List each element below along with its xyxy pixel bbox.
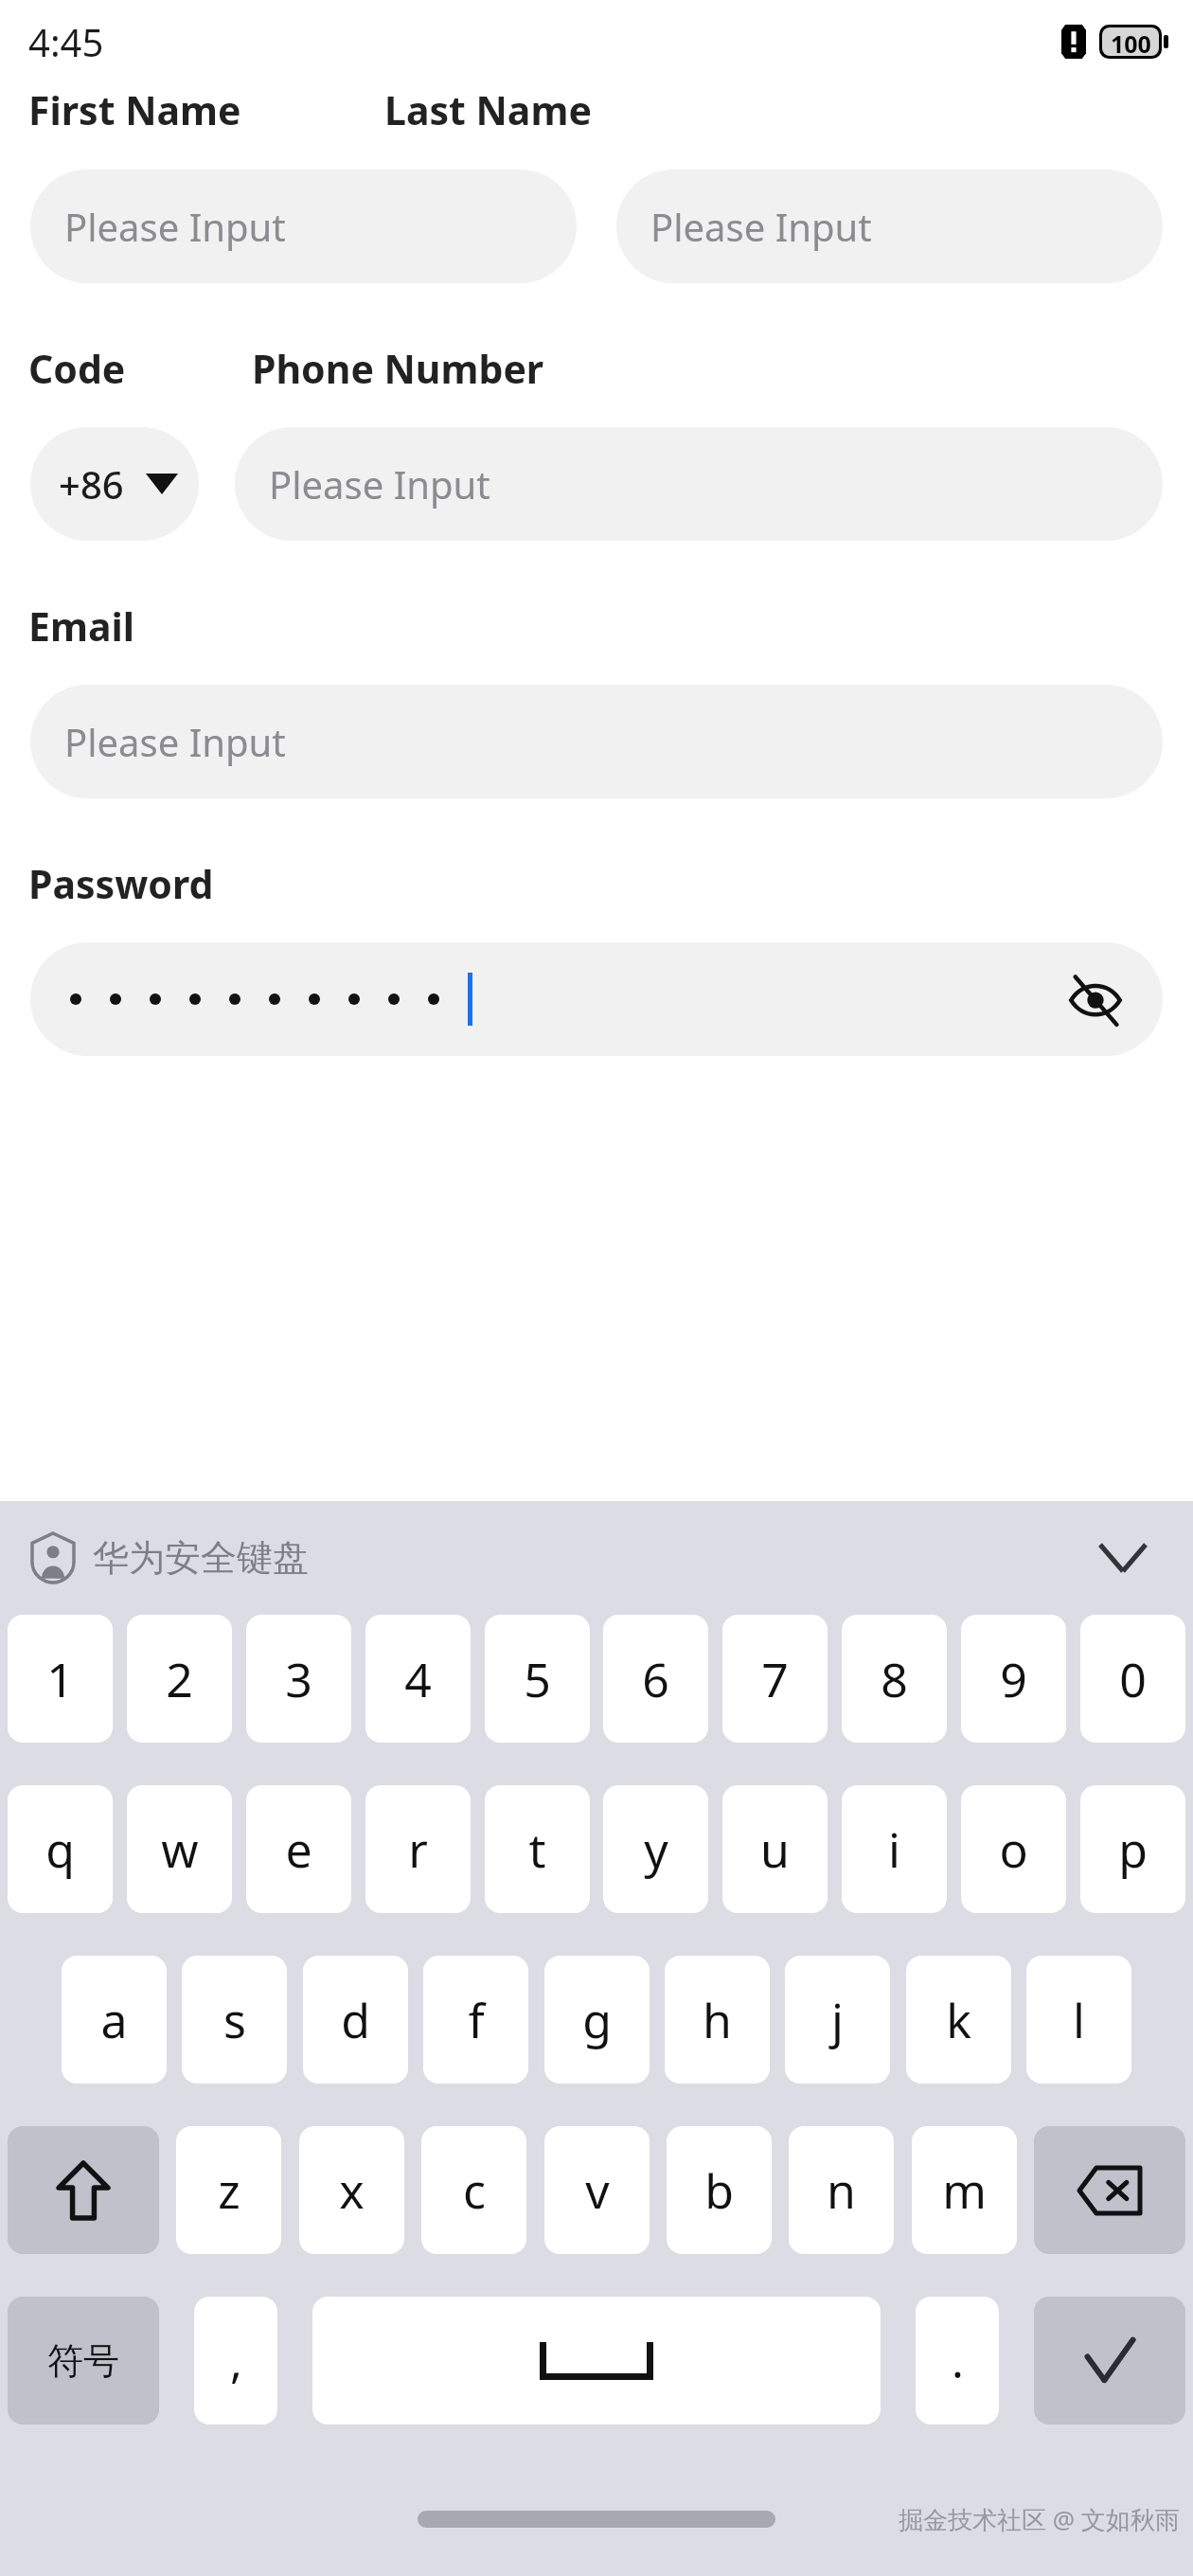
staticText: u — [760, 1817, 790, 1882]
button[interactable]: 6 — [603, 1615, 708, 1743]
button[interactable]: 3 — [246, 1615, 351, 1743]
staticText: p — [1118, 1817, 1148, 1882]
staticText: w — [161, 1817, 199, 1882]
button[interactable]: 5 — [485, 1615, 590, 1743]
other: Shift — [59, 2163, 108, 2218]
staticText: y — [644, 1817, 668, 1882]
staticText: 2 — [166, 1647, 193, 1711]
button[interactable]: 7 — [722, 1615, 828, 1743]
button[interactable]: , — [194, 2297, 277, 2424]
button[interactable]: o — [961, 1785, 1066, 1913]
button[interactable]: s — [182, 1956, 287, 2084]
staticText: h — [703, 1988, 732, 2052]
button[interactable]: t — [485, 1785, 590, 1913]
staticText: f — [468, 1988, 485, 2052]
staticText: 7 — [761, 1647, 789, 1711]
button[interactable]: v — [544, 2126, 650, 2254]
button[interactable]: Hide keyboard — [1085, 1520, 1161, 1596]
staticText: . — [952, 2330, 964, 2391]
button[interactable]: p — [1080, 1785, 1185, 1913]
button[interactable]: y — [603, 1785, 708, 1913]
button[interactable]: Show password — [1055, 958, 1136, 1040]
button[interactable]: . — [916, 2297, 999, 2424]
staticText: v — [585, 2158, 610, 2223]
staticText: n — [827, 2158, 856, 2223]
staticText: Please Input — [64, 201, 286, 252]
button[interactable]: b — [667, 2126, 772, 2254]
button[interactable]: l — [1026, 1956, 1131, 2084]
button[interactable]: w — [127, 1785, 232, 1913]
staticText: 4:45 — [28, 16, 104, 67]
button[interactable]: k — [906, 1956, 1011, 2084]
staticText: b — [704, 2158, 734, 2223]
staticText: z — [218, 2158, 240, 2223]
button[interactable]: r — [365, 1785, 471, 1913]
staticText: s — [223, 1988, 246, 2052]
staticText: d — [341, 1988, 370, 2052]
staticText: 掘金技术社区 @ 文如秋雨 — [899, 2502, 1180, 2536]
staticText: a — [100, 1988, 128, 2052]
button[interactable]: n — [789, 2126, 894, 2254]
button[interactable]: 8 — [842, 1615, 947, 1743]
button[interactable]: m — [912, 2126, 1017, 2254]
button[interactable]: 1 — [8, 1615, 113, 1743]
staticText: i — [888, 1817, 900, 1882]
staticText: q — [45, 1817, 75, 1882]
button[interactable]: q — [8, 1785, 113, 1913]
button[interactable]: 9 — [961, 1615, 1066, 1743]
button[interactable]: c — [421, 2126, 526, 2254]
staticText: Please Input — [650, 201, 872, 252]
staticText: 9 — [1000, 1647, 1027, 1711]
staticText: l — [1073, 1988, 1085, 2052]
staticText: 100 — [1111, 27, 1151, 56]
button[interactable] — [312, 2297, 881, 2424]
button[interactable]: Please Input — [30, 685, 1163, 798]
button[interactable]: e — [246, 1785, 351, 1913]
button[interactable]: Please Input — [616, 170, 1163, 283]
button[interactable]: j — [785, 1956, 890, 2084]
staticText: Code — [28, 342, 227, 395]
staticText: Last Name — [384, 83, 592, 136]
staticText: m — [942, 2158, 987, 2223]
other: Backspace — [1079, 2168, 1140, 2213]
staticText: g — [582, 1988, 612, 2052]
staticText: Please Input — [269, 458, 490, 510]
button[interactable]: x — [299, 2126, 404, 2254]
button[interactable]: d — [303, 1956, 408, 2084]
staticText: 华为安全键盘 — [93, 1535, 309, 1581]
button[interactable]: i — [842, 1785, 947, 1913]
staticText: Password — [28, 857, 214, 910]
button[interactable]: z — [176, 2126, 281, 2254]
button[interactable]: 4 — [365, 1615, 471, 1743]
button[interactable]: Backspace — [1034, 2126, 1185, 2254]
button[interactable]: g — [544, 1956, 650, 2084]
staticText: 8 — [881, 1647, 908, 1711]
staticText: o — [999, 1817, 1028, 1882]
staticText: 符号 — [47, 2338, 119, 2384]
button[interactable]: Shift — [8, 2126, 159, 2254]
button[interactable]: Please Input — [235, 427, 1163, 541]
staticText: Phone Number — [252, 342, 544, 395]
button[interactable]: Please Input — [30, 170, 577, 283]
button[interactable]: h — [665, 1956, 770, 2084]
button[interactable]: +86 — [30, 427, 199, 541]
staticText: 3 — [285, 1647, 312, 1711]
staticText: Email — [28, 599, 134, 653]
button[interactable]: Show password — [30, 942, 1163, 1056]
button[interactable]: 2 — [127, 1615, 232, 1743]
staticText: e — [285, 1817, 312, 1882]
staticText: , — [230, 2330, 242, 2391]
staticText: 6 — [642, 1647, 669, 1711]
button[interactable]: 符号 — [8, 2297, 159, 2424]
other: Enter — [1083, 2334, 1136, 2388]
button[interactable]: 0 — [1080, 1615, 1185, 1743]
button[interactable]: Enter — [1034, 2297, 1185, 2424]
button[interactable]: u — [722, 1785, 828, 1913]
staticText: Please Input — [64, 716, 286, 767]
staticText: +86 — [59, 458, 124, 510]
button[interactable]: a — [62, 1956, 167, 2084]
staticText: c — [463, 2158, 486, 2223]
button[interactable]: f — [423, 1956, 528, 2084]
staticText: 0 — [1119, 1647, 1147, 1711]
staticText: First Name — [28, 83, 350, 136]
